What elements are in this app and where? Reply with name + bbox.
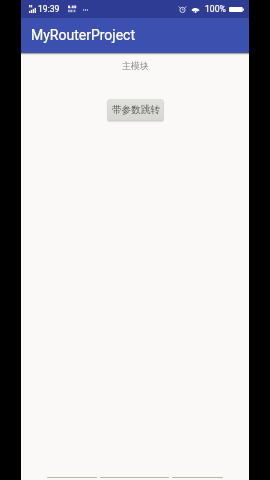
staticText: MyRouterProject [31,27,136,43]
button[interactable]: 带参数跳转 [108,99,163,120]
staticText: 19:39 [38,4,60,14]
staticText: 带参数跳转 [112,104,160,116]
staticText: 100% [205,4,226,14]
staticText: 主模块 [122,60,149,71]
